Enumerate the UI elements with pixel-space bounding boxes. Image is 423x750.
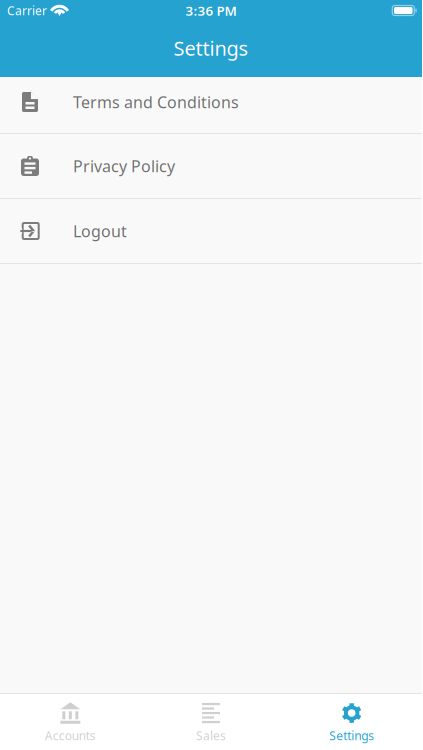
button[interactable]: Logout bbox=[0, 199, 422, 264]
staticText: Terms and Conditions bbox=[73, 91, 239, 113]
button[interactable]: Settings bbox=[281, 694, 422, 750]
staticText: Carrier bbox=[7, 2, 47, 18]
staticText: 3:36 PM bbox=[185, 2, 236, 19]
staticText: Privacy Policy bbox=[73, 155, 175, 177]
button[interactable]: Sales bbox=[141, 694, 281, 750]
staticText: Sales bbox=[196, 727, 226, 743]
staticText: Accounts bbox=[45, 727, 96, 743]
staticText: Logout bbox=[73, 220, 127, 242]
button[interactable]: Privacy Policy bbox=[0, 134, 422, 199]
staticText: Settings bbox=[173, 35, 248, 61]
button[interactable]: Terms and Conditions bbox=[0, 77, 422, 134]
staticText: Settings bbox=[329, 727, 374, 743]
button[interactable]: Accounts bbox=[0, 694, 141, 750]
